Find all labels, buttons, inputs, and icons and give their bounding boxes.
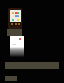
button[interactable]: Phone preview (8, 8, 22, 29)
